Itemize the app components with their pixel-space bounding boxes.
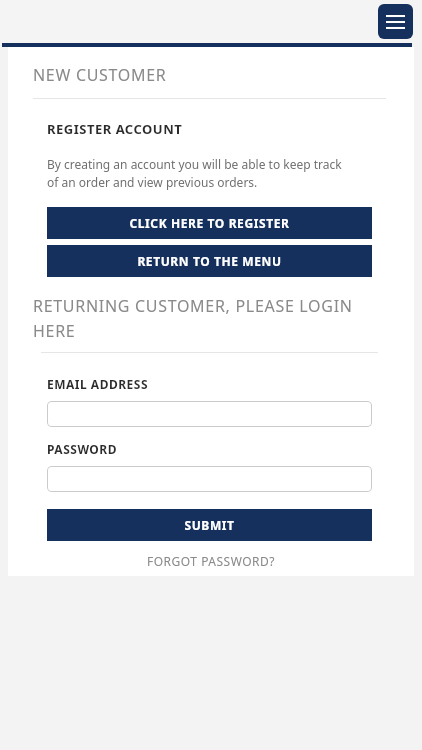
staticText: FORGOT PASSWORD? [147,553,275,569]
staticText: RETURN TO THE MENU [137,253,282,269]
button[interactable]: CLICK HERE TO REGISTER [47,207,372,239]
button[interactable]: SUBMIT [47,509,372,541]
button[interactable]: Menu [378,4,413,39]
staticText: By creating an account you will be able … [47,156,342,191]
staticText: NEW CUSTOMER [33,64,167,86]
button[interactable]: FORGOT PASSWORD? [147,553,275,569]
staticText: EMAIL ADDRESS [47,376,149,392]
staticText: RETURNING CUSTOMER, PLEASE LOGIN HERE [33,295,353,341]
staticText: SUBMIT [184,517,235,533]
button[interactable] [47,401,372,427]
staticText: CLICK HERE TO REGISTER [129,215,290,231]
staticText: PASSWORD [47,441,118,457]
staticText: REGISTER ACCOUNT [47,120,183,138]
button[interactable] [47,466,372,492]
button[interactable]: RETURN TO THE MENU [47,245,372,277]
